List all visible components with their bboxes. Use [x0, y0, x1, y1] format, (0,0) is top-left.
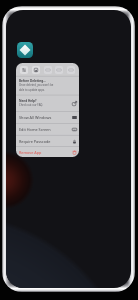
staticText: Need Help? [19, 99, 37, 103]
button[interactable]: Shortcut 3 [44, 66, 52, 74]
staticText: Remove App [19, 150, 42, 155]
button[interactable]: Before Deleting... [16, 77, 79, 95]
staticText: Once deleted, you won't be able to updat… [19, 83, 54, 91]
button[interactable]: Need Help? [16, 95, 79, 111]
staticText: Require Passcode [19, 139, 51, 144]
button[interactable]: Require Passcode [16, 136, 79, 147]
button[interactable]: Shortcut 4 [55, 66, 63, 74]
button[interactable]: Shortcut 5 [67, 66, 75, 74]
button[interactable]: Edit Home Screen [16, 124, 79, 135]
staticText: Edit Home Screen [19, 127, 51, 132]
button[interactable]: Remove App [16, 147, 79, 157]
button[interactable]: App icon [17, 42, 33, 58]
staticText: Check out our FAQ. [19, 103, 44, 107]
button[interactable]: Shortcut 2 [32, 66, 40, 74]
button[interactable]: Show All Windows [16, 112, 79, 123]
button[interactable]: Shortcut 1 [20, 66, 28, 74]
staticText: Before Deleting... [19, 79, 46, 83]
staticText: Show All Windows [19, 115, 52, 120]
